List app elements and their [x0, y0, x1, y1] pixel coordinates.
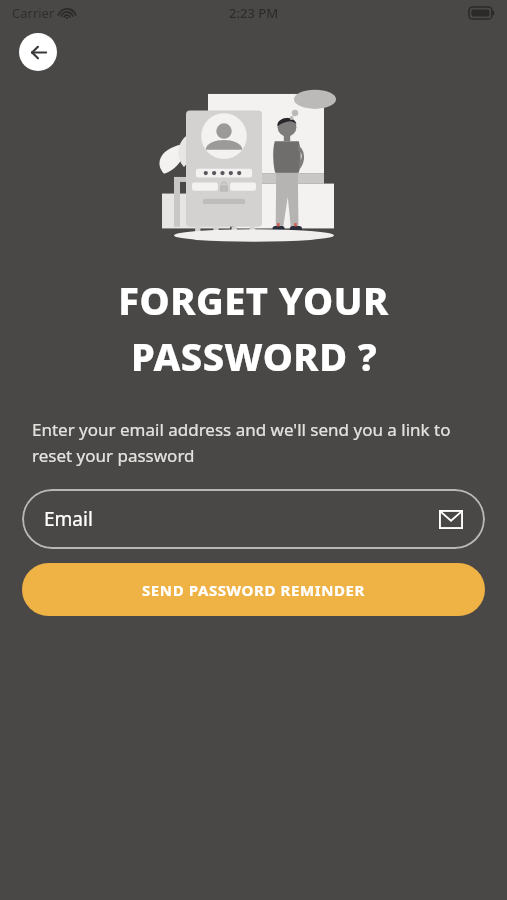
staticText: SEND PASSWORD REMINDER — [142, 580, 365, 600]
staticText: Email — [44, 506, 93, 532]
staticText: PASSWORD ? — [131, 330, 377, 382]
staticText: Enter your email address and we'll send … — [32, 418, 475, 467]
staticText: 2:23 PM — [229, 4, 279, 22]
staticText: Carrier — [12, 4, 55, 22]
button[interactable]: SEND PASSWORD REMINDER — [22, 563, 485, 616]
button[interactable]: Email — [22, 489, 485, 549]
staticText: FORGET YOUR — [118, 274, 389, 326]
button[interactable]: Back — [19, 33, 57, 71]
other: Email — [439, 510, 463, 529]
